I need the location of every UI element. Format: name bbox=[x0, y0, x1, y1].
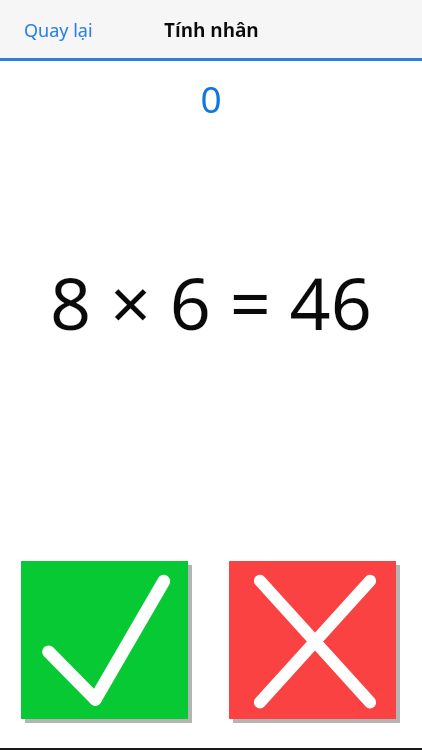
staticText: 0 bbox=[0, 73, 422, 123]
staticText: Tính nhân bbox=[164, 17, 259, 43]
button[interactable]: Quay lại bbox=[0, 0, 69, 58]
staticText: 8 × 6 = 46 bbox=[0, 253, 422, 351]
button[interactable]: Wrong answer bbox=[229, 561, 400, 723]
button[interactable]: Correct answer bbox=[21, 561, 192, 723]
staticText: Quay lại bbox=[24, 18, 93, 43]
